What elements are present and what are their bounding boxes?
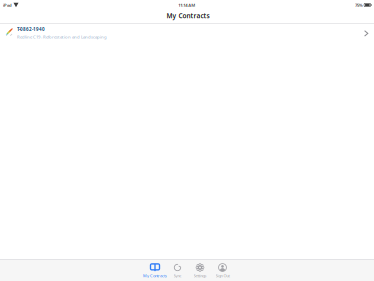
button[interactable]: Sync bbox=[172, 260, 182, 280]
staticText: T-0862-1940 bbox=[17, 26, 45, 32]
staticText: Redline C19 - Reforestation and Landscap… bbox=[17, 34, 107, 40]
staticText: 75% bbox=[355, 2, 363, 8]
staticText: 11:14 AM bbox=[178, 2, 195, 8]
staticText: Settings bbox=[193, 273, 206, 278]
staticText: iPad bbox=[3, 2, 12, 8]
button[interactable]: Settings bbox=[192, 260, 207, 280]
button[interactable]: T-0862-1940 bbox=[0, 24, 374, 44]
button[interactable]: My Contracts bbox=[142, 260, 168, 280]
staticText: My Contracts bbox=[166, 11, 209, 20]
staticText: Sign Out bbox=[215, 273, 229, 278]
staticText: My Contracts bbox=[143, 273, 167, 278]
staticText: Sync bbox=[173, 273, 181, 278]
button[interactable]: Sign Out bbox=[214, 260, 230, 280]
